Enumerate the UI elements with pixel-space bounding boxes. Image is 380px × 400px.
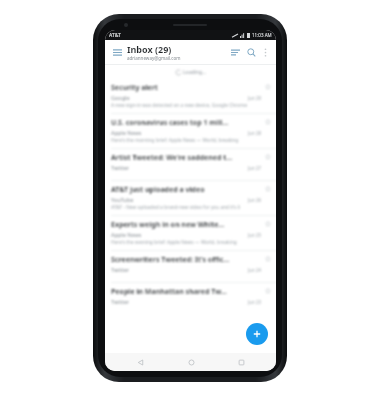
button[interactable]: Screenwriters Tweeted: It's offic...: [105, 251, 276, 282]
staticText: Jun 28: [248, 130, 262, 136]
staticText: Inbox (29): [127, 43, 172, 55]
staticText: Jun 26: [248, 197, 262, 203]
button[interactable]: More options: [259, 46, 271, 58]
staticText: AT&T: [109, 32, 121, 39]
staticText: Apple News: [111, 129, 248, 136]
staticText: Twitter: [111, 266, 248, 273]
staticText: Twitter: [111, 298, 248, 305]
button[interactable]: Home: [176, 353, 206, 371]
staticText: Jun 25: [248, 232, 262, 238]
staticText: adrianneway@gmail.com: [127, 55, 181, 61]
staticText: Security alert: [111, 83, 158, 93]
staticText: Apple News: [111, 231, 248, 238]
button[interactable]: Back: [125, 353, 155, 371]
staticText: Twitter: [111, 164, 248, 171]
staticText: Jun 23: [248, 299, 262, 305]
staticText: Here's the morning brief: Apple News — W…: [111, 137, 239, 144]
button[interactable]: Sort: [228, 45, 242, 59]
staticText: Jun 24: [248, 267, 262, 273]
staticText: AT&T - New uploaded a brand-new video fo…: [111, 204, 241, 211]
staticText: Loading…: [183, 69, 206, 76]
staticText: U.S. coronavirus cases top 1 mill...: [111, 118, 229, 128]
staticText: Here's the evening brief: Apple News — W…: [111, 239, 237, 246]
button[interactable]: Recent apps: [226, 353, 256, 371]
staticText: Jun 27: [248, 165, 262, 171]
staticText: Google: [111, 94, 248, 101]
staticText: People in Manhattan shared Tw...: [111, 287, 227, 297]
button[interactable]: U.S. coronavirus cases top 1 mill...: [105, 114, 276, 148]
staticText: Artist Tweeted: We're saddened t...: [111, 153, 233, 163]
staticText: AT&T just uploaded a video: [111, 185, 205, 195]
button[interactable]: Security alert: [105, 79, 276, 113]
button[interactable]: AT&T just uploaded a video: [105, 181, 276, 215]
button[interactable]: Artist Tweeted: We're saddened t...: [105, 149, 276, 180]
staticText: Jun 29: [248, 95, 262, 101]
button[interactable]: Open navigation menu: [110, 45, 124, 59]
button[interactable]: People in Manhattan shared Tw...: [105, 283, 276, 314]
button[interactable]: Experts weigh in on new White...: [105, 216, 276, 250]
staticText: A new sign-in was detected on a new devi…: [111, 102, 248, 109]
staticText: Screenwriters Tweeted: It's offic...: [111, 255, 230, 265]
staticText: 11:03 AM: [252, 32, 272, 38]
button[interactable]: Search: [244, 45, 258, 59]
button[interactable]: Compose: [246, 323, 268, 345]
staticText: YouTube: [111, 196, 248, 203]
staticText: Experts weigh in on new White...: [111, 220, 225, 230]
